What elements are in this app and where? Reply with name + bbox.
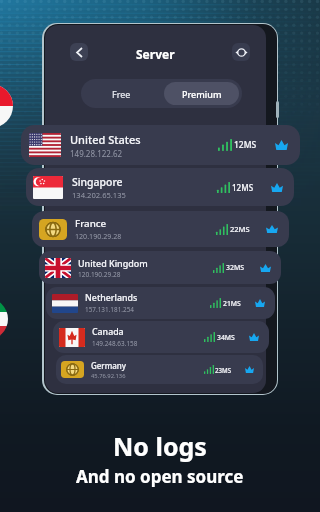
staticText: 32MS <box>226 263 245 272</box>
staticText: And no open source <box>76 465 244 488</box>
staticText: 134.202.65.135 <box>72 190 126 200</box>
button[interactable]: Singapore <box>26 168 294 206</box>
staticText: 22MS <box>230 224 250 234</box>
staticText: 157.131.181.254 <box>85 305 135 314</box>
button[interactable]: Netherlands <box>46 287 275 319</box>
staticText: United Kingdom <box>78 257 148 269</box>
other: Premium server <box>249 333 259 341</box>
other: Premium server <box>245 366 254 373</box>
other: Premium server <box>266 225 278 233</box>
button[interactable]: Canada <box>53 321 269 353</box>
staticText: No logs <box>113 429 207 463</box>
staticText: 12MS <box>234 139 257 151</box>
other: Premium server <box>260 264 271 272</box>
staticText: 45.76.92.136 <box>91 372 126 380</box>
button[interactable]: Germany <box>56 355 263 384</box>
other: Premium server <box>271 183 283 192</box>
staticText: 12MS <box>232 182 254 193</box>
staticText: Premium <box>182 88 222 100</box>
staticText: 149.28.122.62 <box>70 148 123 159</box>
staticText: 21MS <box>223 299 241 308</box>
button[interactable]: United States <box>21 125 300 165</box>
staticText: Germany <box>91 360 127 371</box>
staticText: France <box>75 217 107 230</box>
staticText: Netherlands <box>85 292 138 304</box>
staticText: Canada <box>92 326 124 338</box>
staticText: Server <box>136 46 175 62</box>
staticText: Singapore <box>72 175 123 189</box>
button[interactable]: Refresh <box>232 43 250 61</box>
staticText: 23MS <box>215 366 232 374</box>
other: Premium server <box>255 299 265 307</box>
staticText: Free <box>112 88 131 100</box>
staticText: 120.190.29.28 <box>78 270 121 279</box>
staticText: 149.248.63.158 <box>92 339 138 348</box>
staticText: 34MS <box>217 333 235 342</box>
button[interactable]: Free <box>81 79 161 108</box>
button[interactable]: United Kingdom <box>39 251 281 284</box>
button[interactable]: Premium <box>164 82 239 105</box>
staticText: 120.190.29.28 <box>75 231 122 241</box>
button[interactable]: Back <box>70 43 88 61</box>
other: Premium server <box>275 140 288 150</box>
button[interactable]: France <box>32 211 289 247</box>
staticText: United States <box>70 132 141 147</box>
